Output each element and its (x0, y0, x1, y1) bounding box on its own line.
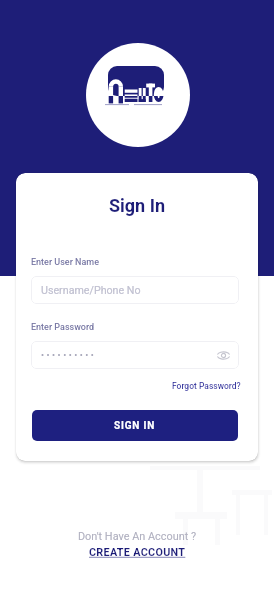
button[interactable]: Forgot Password? (172, 381, 241, 391)
button[interactable]: •••••••••• (31, 341, 239, 369)
button[interactable]: SIGN IN (32, 410, 238, 441)
button[interactable]: Username/Phone No (31, 276, 239, 304)
staticText: •••••••••• (41, 350, 97, 361)
button[interactable]: Show password (214, 346, 232, 364)
staticText: Enter User Name (31, 257, 99, 268)
staticText: Enter Password (31, 322, 95, 333)
button[interactable]: CREATE ACCOUNT (89, 546, 186, 559)
staticText: Username/Phone No (41, 284, 141, 297)
staticText: Don't Have An Account ? (0, 530, 274, 543)
staticText: SIGN IN (114, 420, 156, 432)
staticText: Sign In (16, 195, 258, 216)
